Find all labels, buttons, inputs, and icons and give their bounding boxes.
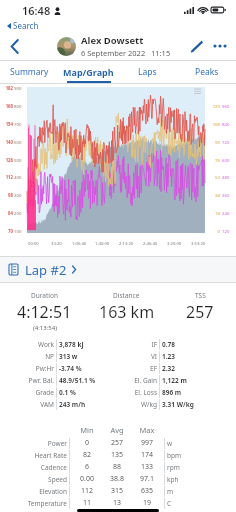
staticText: Alex Dowsett — [81, 34, 144, 47]
staticText: 140 — [0, 139, 13, 145]
staticText: 00:00 — [28, 241, 39, 247]
staticText: Avg — [102, 425, 132, 435]
staticText: -3.74 % — [59, 364, 119, 373]
staticText: Grade — [14, 388, 54, 397]
button[interactable]: Laps — [118, 61, 177, 83]
staticText: 135 — [102, 450, 132, 460]
staticText: 0.1 % — [59, 388, 119, 397]
staticText: Distance — [113, 291, 140, 300]
staticText: 840 — [222, 121, 236, 127]
staticText: Heart Rate — [12, 451, 67, 460]
staticText: 0 — [207, 228, 220, 234]
staticText: 97.1 — [132, 474, 162, 484]
staticText: 720 — [222, 139, 236, 145]
staticText: 11:15 — [151, 48, 171, 58]
button[interactable]: Peaks — [177, 61, 236, 83]
staticText: 33:20 — [51, 241, 62, 247]
staticText: (4:13:54) — [33, 324, 57, 332]
staticText: TSS — [195, 291, 206, 300]
staticText: 2.32 — [162, 364, 228, 373]
staticText: 480 — [222, 174, 236, 180]
staticText: m — [167, 487, 228, 496]
staticText: 500 — [14, 157, 26, 163]
staticText: NP — [14, 352, 54, 361]
staticText: 1,122 m — [162, 376, 228, 385]
button[interactable]: More options — [209, 35, 231, 57]
staticText: 120 — [222, 228, 236, 234]
staticText: 70 — [0, 228, 13, 234]
staticText: W/kg — [119, 400, 157, 409]
staticText: C — [167, 499, 228, 508]
staticText: 0.78 — [162, 340, 228, 349]
staticText: Map/Graph — [63, 66, 114, 78]
staticText: 2:13:20 — [119, 241, 134, 247]
staticText: 90 — [207, 139, 220, 145]
staticText: 18 — [207, 210, 220, 216]
staticText: 1.23 — [162, 352, 228, 361]
staticText: 182 — [0, 85, 13, 91]
staticText: Peaks — [195, 66, 219, 78]
staticText: 133 — [132, 462, 162, 472]
staticText: bpm — [167, 451, 228, 460]
staticText: 700 — [14, 121, 26, 127]
staticText: 400 — [14, 174, 26, 180]
staticText: El. Loss — [119, 388, 157, 397]
staticText: 200 — [14, 210, 26, 216]
staticText: 6 — [72, 462, 102, 472]
staticText: 800 — [14, 103, 26, 109]
button[interactable]: Lap #2 — [0, 257, 236, 282]
staticText: Laps — [138, 66, 157, 78]
staticText: 48.9/51.1 % — [59, 376, 119, 385]
staticText: 0.00 — [72, 474, 102, 484]
staticText: 3:53:20 — [191, 241, 206, 247]
staticText: 313 w — [59, 352, 119, 361]
staticText: 163 km — [99, 301, 155, 323]
staticText: 54 — [207, 174, 220, 180]
staticText: 11 — [72, 498, 102, 508]
staticText: 6 September 2022 — [81, 48, 146, 58]
staticText: El. Gain — [119, 376, 157, 385]
staticText: 98 — [0, 192, 13, 198]
staticText: 4:12:51 — [17, 301, 72, 323]
staticText: VI — [119, 352, 157, 361]
staticText: Search — [13, 20, 39, 31]
staticText: Summary — [10, 66, 49, 78]
staticText: Speed — [12, 475, 67, 484]
staticText: 100 — [14, 228, 26, 234]
button[interactable]: Summary — [0, 61, 59, 83]
staticText: Power — [12, 439, 67, 448]
staticText: 13 — [102, 498, 132, 508]
staticText: 82 — [72, 450, 102, 460]
staticText: 112 — [72, 486, 102, 496]
other: Chart options — [194, 89, 201, 94]
staticText: Work — [14, 340, 54, 349]
staticText: VAM — [14, 400, 54, 409]
button[interactable]: Back — [3, 34, 27, 58]
button[interactable]: Edit — [185, 35, 207, 57]
staticText: Min — [72, 425, 102, 435]
staticText: 75 — [207, 157, 220, 163]
staticText: 960 — [222, 103, 236, 109]
staticText: 126 — [0, 157, 13, 163]
staticText: Pw:Hr — [14, 364, 54, 373]
staticText: 112 — [0, 174, 13, 180]
staticText: 3,878 kJ — [59, 340, 119, 349]
staticText: 129 — [207, 103, 220, 109]
staticText: 243 m/h — [59, 400, 119, 409]
staticText: 900 — [14, 85, 26, 91]
staticText: 600 — [222, 157, 236, 163]
staticText: 896 m — [162, 388, 228, 397]
button[interactable]: Map/Graph — [59, 61, 118, 83]
staticText: Cadence — [12, 463, 67, 472]
staticText: w — [167, 439, 228, 448]
staticText: Pwr. Bal. — [14, 376, 54, 385]
staticText: 300 — [14, 192, 26, 198]
staticText: Lap #2 — [25, 261, 67, 279]
staticText: 16:48 — [22, 3, 51, 18]
staticText: Max — [132, 425, 162, 435]
staticText: 19 — [132, 498, 162, 508]
staticText: 168 — [0, 103, 13, 109]
staticText: 257 — [102, 438, 132, 448]
staticText: Elevation — [12, 487, 67, 496]
